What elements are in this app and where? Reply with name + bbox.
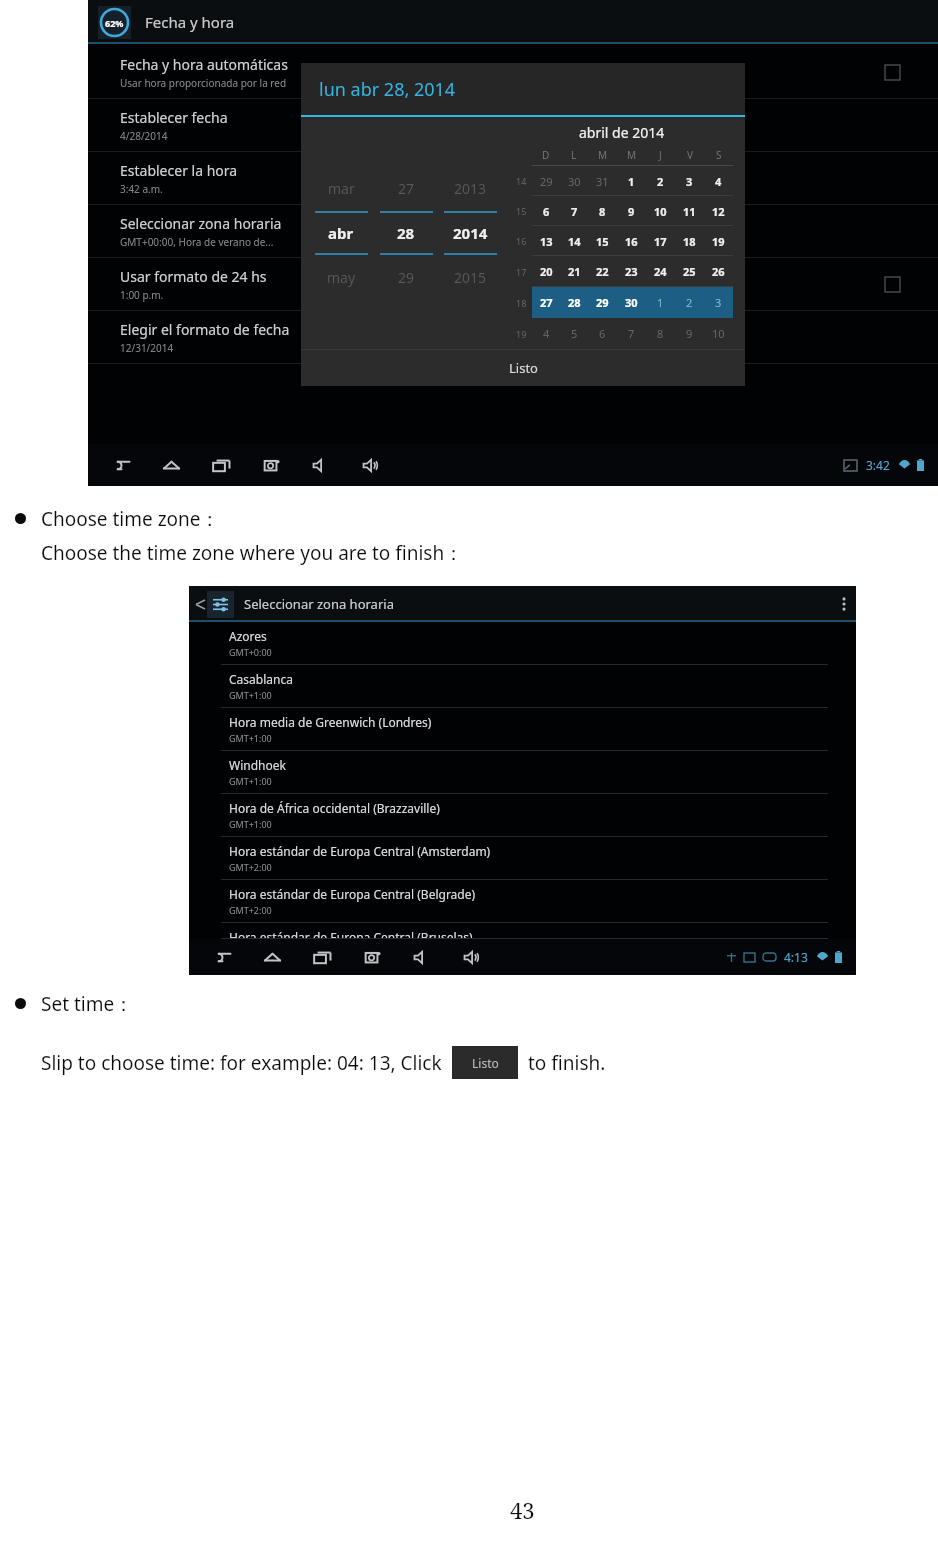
button[interactable]: Screenshot [359,944,385,970]
button[interactable]: 21 [560,256,588,287]
button[interactable]: 2 [675,287,704,318]
button[interactable]: Home [158,452,184,478]
staticText: Windhoek [229,757,286,773]
button[interactable]: Listo [452,1046,518,1079]
button[interactable]: 14 [560,226,588,256]
button[interactable]: 23 [617,256,646,287]
staticText: Listo [472,1055,499,1071]
staticText: 2 [657,174,664,189]
button[interactable]: 12 [704,196,733,226]
button[interactable]: More options [832,586,856,622]
button[interactable]: Azores [189,622,856,665]
button[interactable]: Hora estándar de Europa Central (Belgrad… [189,880,856,923]
button[interactable]: 25 [675,256,704,287]
button[interactable]: 3 [704,287,733,318]
button[interactable]: Volume down [308,452,334,478]
button[interactable]: Volume down [409,944,435,970]
button[interactable]: 31 [588,166,617,196]
staticText: 4 [543,326,550,341]
button[interactable]: 3 [675,166,704,196]
button[interactable]: Seleccionar zona horaria [88,205,938,258]
button[interactable]: Windhoek [189,751,856,794]
button[interactable]: Recent apps [309,944,335,970]
button[interactable]: 17 [646,226,675,256]
button[interactable]: Establecer la hora [88,152,938,205]
button[interactable]: Establecer fecha [88,99,938,152]
staticText: Set time： [41,991,134,1017]
button[interactable]: 4 [704,166,733,196]
button[interactable]: 29 [588,287,617,318]
staticText: 29 [596,295,609,310]
staticText: Hora estándar de Europa Central (Belgrad… [229,886,476,902]
staticText: 23 [625,264,638,279]
button[interactable]: 9 [617,196,646,226]
button[interactable]: 28 [560,287,588,318]
staticText: Casablanca [229,671,293,687]
button[interactable]: Screenshot [258,452,284,478]
button[interactable]: Hora media de Greenwich (Londres) [189,708,856,751]
button[interactable]: Back [209,944,235,970]
staticText: 10 [654,204,667,219]
button[interactable]: Volume up [358,452,384,478]
staticText: 16 [625,234,638,249]
staticText: 12/31/2014 [120,341,174,355]
button[interactable]: Settings app icon [98,6,131,39]
staticText: 1:00 p.m. [120,288,164,302]
button[interactable]: Elegir el formato de fecha [88,311,938,364]
button[interactable]: 10 [704,318,733,349]
button[interactable]: 30 [617,287,646,318]
button[interactable]: 27 [532,287,560,318]
button[interactable]: 9 [675,318,704,349]
button[interactable]: 6 [588,318,617,349]
button[interactable]: Home [259,944,285,970]
staticText: GMT+00:00, Hora de verano de... [120,235,274,249]
staticText: Establecer fecha [120,108,228,127]
button[interactable]: Back [108,452,134,478]
button[interactable]: 2 [646,166,675,196]
button[interactable]: 7 [560,196,588,226]
button[interactable]: 11 [675,196,704,226]
staticText: Seleccionar zona horaria [120,214,282,233]
staticText: 26 [712,264,725,279]
button[interactable]: 18 [675,226,704,256]
button[interactable]: 1 [617,166,646,196]
button[interactable]: 27 [376,179,436,287]
button[interactable]: 16 [617,226,646,256]
button[interactable]: 24 [646,256,675,287]
button[interactable]: 26 [704,256,733,287]
button[interactable]: 19 [704,226,733,256]
button[interactable]: 29 [532,166,560,196]
button[interactable]: 30 [560,166,588,196]
button[interactable]: Recent apps [208,452,234,478]
button[interactable]: Casablanca [189,665,856,708]
staticText: 7 [628,326,635,341]
button[interactable]: 4 [532,318,560,349]
button[interactable]: 22 [588,256,617,287]
button[interactable]: 8 [646,318,675,349]
button[interactable]: Fecha y hora automáticas [88,46,938,99]
button[interactable]: Hora estándar de Europa Central (Amsterd… [189,837,856,880]
button[interactable]: 20 [532,256,560,287]
button[interactable] [207,591,234,618]
button[interactable]: 8 [588,196,617,226]
button[interactable]: Usar formato de 24 hs [88,258,938,311]
button[interactable]: 1 [646,287,675,318]
button[interactable]: 5 [560,318,588,349]
button[interactable]: 13 [532,226,560,256]
button[interactable]: Volume up [459,944,485,970]
button[interactable]: 15 [588,226,617,256]
button[interactable]: 6 [532,196,560,226]
button[interactable]: Hora de África occidental (Brazzaville) [189,794,856,837]
button[interactable]: 7 [617,318,646,349]
button[interactable]: Listo [301,350,745,386]
button[interactable]: Hora estándar de Europa Central (Brusela… [189,923,856,939]
staticText: Elegir el formato de fecha [120,320,290,339]
staticText: 30 [625,295,638,310]
staticText: Hora de África occidental (Brazzaville) [229,800,440,816]
button[interactable]: mar [311,179,371,287]
button[interactable]: Back [193,597,207,611]
staticText: 8 [657,326,664,341]
button[interactable]: 2013 [440,179,500,287]
staticText: 4 [715,174,722,189]
button[interactable]: 10 [646,196,675,226]
